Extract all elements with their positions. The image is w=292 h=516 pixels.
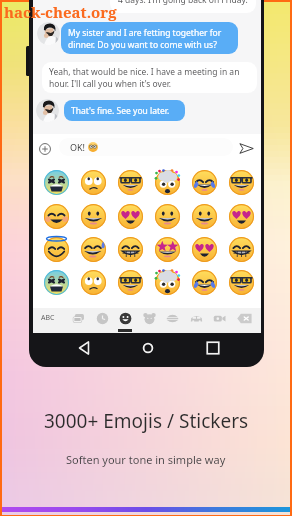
button[interactable]: Animals xyxy=(139,309,159,327)
staticText: That's fine. See you later. xyxy=(71,105,170,117)
button[interactable]: Emoji xyxy=(38,200,74,232)
button[interactable]: Emoji xyxy=(112,233,148,265)
button[interactable]: Recent xyxy=(92,309,112,327)
button[interactable]: Emoji xyxy=(38,166,74,198)
button[interactable]: Emoji xyxy=(112,166,148,198)
button[interactable]: Emoji xyxy=(75,233,111,265)
button[interactable]: Emoji xyxy=(186,233,222,265)
button[interactable]: Emoji xyxy=(149,233,185,265)
button[interactable]: Backspace xyxy=(233,309,253,327)
button[interactable]: Add attachment xyxy=(39,143,51,155)
button[interactable]: Emoji xyxy=(75,166,111,198)
button[interactable]: Emoji xyxy=(38,233,74,265)
button[interactable]: Emoji xyxy=(149,266,185,298)
button[interactable]: Emoji xyxy=(186,200,222,232)
button[interactable]: Send xyxy=(239,141,254,156)
button[interactable]: Emoji xyxy=(112,266,148,298)
button[interactable]: Smileys xyxy=(115,309,135,327)
button[interactable]: Emoji xyxy=(223,233,259,265)
staticText: OK! xyxy=(70,141,86,153)
button[interactable]: Recent apps xyxy=(205,340,221,356)
button[interactable]: Food xyxy=(162,309,182,327)
button[interactable]: Home xyxy=(140,340,156,356)
button[interactable]: Emoji xyxy=(223,200,259,232)
button[interactable]: Back xyxy=(76,340,92,356)
button[interactable]: Emoji xyxy=(75,266,111,298)
button[interactable]: GIF xyxy=(68,309,88,327)
button[interactable]: OK! xyxy=(59,138,233,156)
button[interactable]: Emoji xyxy=(186,266,222,298)
staticText: 4 days. I'm going back on Friday. xyxy=(118,0,248,6)
button[interactable]: Emoji xyxy=(223,266,259,298)
staticText: 3000+ Emojis / Stickers xyxy=(44,408,249,434)
staticText: Soften your tone in simple way xyxy=(66,452,226,467)
button[interactable]: Emoji xyxy=(186,166,222,198)
staticText: hack-cheat.org xyxy=(4,2,117,22)
button[interactable]: Emoji xyxy=(75,200,111,232)
staticText: ABC xyxy=(41,313,55,323)
button[interactable]: Emoji xyxy=(223,166,259,198)
staticText: Yeah, that would be nice. I have a meeti… xyxy=(49,66,240,90)
staticText: My sister and I are fetting together for… xyxy=(68,27,222,51)
button[interactable]: Objects xyxy=(209,309,229,327)
button[interactable]: Travel xyxy=(186,309,206,327)
button[interactable]: Emoji xyxy=(149,166,185,198)
button[interactable]: Emoji xyxy=(112,200,148,232)
button[interactable]: ABC xyxy=(38,310,58,326)
button[interactable]: Emoji xyxy=(149,200,185,232)
button[interactable]: Emoji xyxy=(38,266,74,298)
